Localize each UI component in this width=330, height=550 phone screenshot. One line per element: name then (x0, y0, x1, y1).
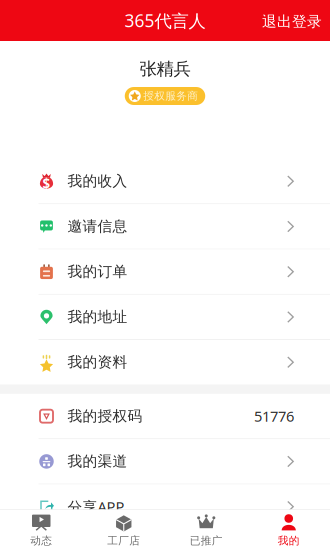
staticText: 退出登录 (262, 12, 322, 30)
staticText: 我的 (278, 534, 300, 547)
button[interactable]: 邀请信息 (0, 204, 330, 249)
staticText: 张精兵 (139, 58, 190, 80)
staticText: 我的地址 (67, 308, 127, 326)
staticText: 365代言人 (124, 9, 205, 32)
staticText: 我的收入 (67, 172, 127, 190)
staticText: 工厂店 (107, 534, 140, 547)
button[interactable]: 退出登录 (251, 0, 330, 42)
button[interactable]: 我的资料 (0, 340, 330, 384)
button[interactable]: 我的地址 (0, 295, 330, 340)
button[interactable]: 我的 (247, 510, 330, 550)
staticText: 我的资料 (67, 353, 127, 371)
staticText: 授权服务商 (143, 89, 198, 102)
button[interactable]: 分享APP (0, 484, 330, 530)
button[interactable]: 动态 (0, 510, 82, 550)
button[interactable]: 已推广 (165, 510, 247, 550)
staticText: 我的授权码 (67, 407, 142, 425)
staticText: 我的渠道 (67, 452, 127, 470)
button[interactable]: 工厂店 (82, 510, 165, 550)
button[interactable]: 我的订单 (0, 249, 330, 295)
staticText: 动态 (30, 534, 52, 547)
staticText: 已推广 (190, 534, 223, 547)
staticText: $ (42, 174, 50, 192)
button[interactable]: 我的授权码 (0, 394, 330, 439)
staticText: 分享APP (67, 497, 124, 516)
staticText: 51776 (254, 406, 294, 426)
button[interactable]: 我的渠道 (0, 439, 330, 484)
staticText: 我的订单 (67, 263, 127, 281)
button[interactable]: $ (0, 159, 330, 204)
staticText: 邀请信息 (67, 217, 127, 235)
